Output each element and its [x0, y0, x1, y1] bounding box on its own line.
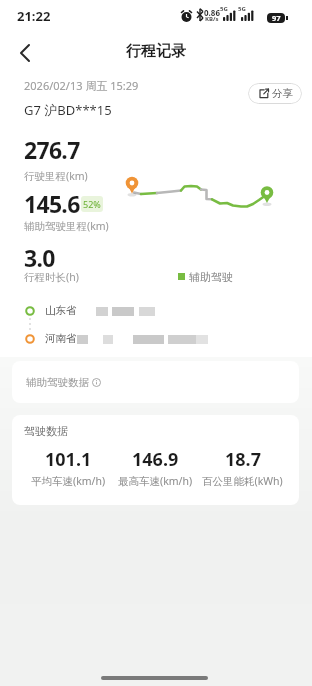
- staticText: 5G: [238, 5, 246, 13]
- staticText: 101.1: [45, 447, 92, 472]
- staticText: 97: [272, 13, 281, 23]
- button[interactable]: 分享: [248, 83, 302, 104]
- staticText: 行程记录: [126, 42, 186, 61]
- staticText: 行程时长(h): [24, 270, 79, 284]
- staticText: 0.86: [204, 7, 220, 18]
- staticText: 行驶里程(km): [24, 169, 88, 183]
- staticText: 276.7: [24, 134, 80, 165]
- staticText: G7 沪BD***15: [24, 101, 112, 119]
- staticText: 河南省: [45, 332, 77, 345]
- button[interactable]: [10, 39, 38, 67]
- button[interactable]: 辅助驾驶数据: [26, 361, 299, 403]
- staticText: 2026/02/13 周五 15:29: [24, 78, 139, 93]
- staticText: 辅助驾驶数据: [26, 376, 89, 389]
- staticText: 52%: [83, 198, 101, 210]
- staticText: 146.9: [132, 447, 179, 472]
- staticText: KB/s: [205, 15, 219, 23]
- staticText: 3.0: [24, 242, 55, 273]
- button[interactable]: 驾驶数据: [12, 415, 299, 505]
- staticText: 最高车速(km/h): [118, 474, 193, 488]
- staticText: 辅助驾驶: [189, 270, 233, 284]
- staticText: 山东省: [45, 304, 77, 317]
- staticText: 5G: [220, 5, 228, 13]
- staticText: 驾驶数据: [24, 424, 68, 438]
- staticText: 百公里能耗(kWh): [202, 474, 283, 488]
- staticText: 145.6: [24, 188, 80, 219]
- staticText: 18.7: [225, 447, 261, 472]
- staticText: 分享: [272, 87, 293, 100]
- staticText: 21:22: [17, 7, 51, 25]
- staticText: 平均车速(km/h): [31, 474, 106, 488]
- staticText: 辅助驾驶里程(km): [24, 219, 109, 233]
